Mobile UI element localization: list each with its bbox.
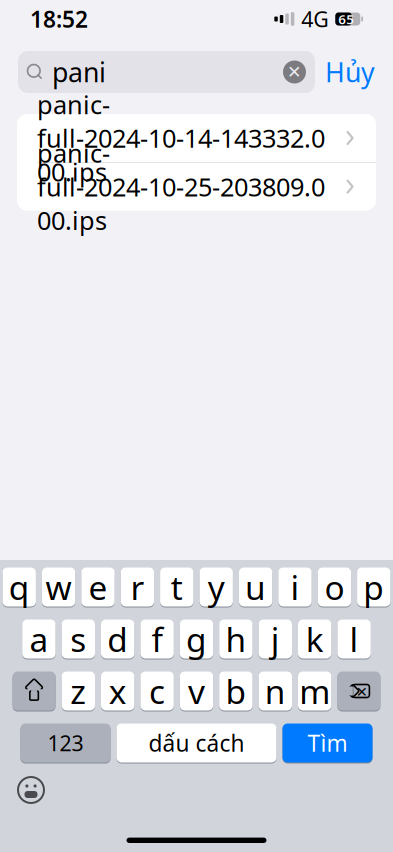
staticText: v (188, 669, 205, 713)
staticText: w (46, 565, 72, 609)
staticText: y (208, 565, 225, 609)
button[interactable]: Shift (13, 671, 56, 711)
button[interactable]: panic-full-2024-10-25-203809.000.ips (17, 163, 376, 211)
button[interactable]: t (160, 567, 193, 607)
staticText: u (245, 565, 266, 609)
staticText: dấu cách (148, 728, 244, 758)
staticText: f (152, 617, 163, 661)
staticText: 18:52 (30, 4, 88, 34)
staticText: a (29, 617, 48, 661)
staticText: p (363, 565, 384, 609)
staticText: Tìm (307, 728, 347, 758)
staticText: i (290, 565, 299, 609)
button[interactable]: u (239, 567, 272, 607)
staticText: × (356, 679, 367, 703)
button[interactable]: Emoji (10, 771, 52, 809)
button[interactable]: m (298, 671, 331, 711)
staticText: 4G (301, 5, 329, 33)
button[interactable]: a (22, 619, 56, 659)
staticText: m (299, 669, 330, 713)
staticText: c (149, 669, 165, 713)
button[interactable]: x (101, 671, 134, 711)
button[interactable]: f (140, 619, 174, 659)
button[interactable]: Delete (337, 671, 380, 711)
button[interactable]: k (298, 619, 331, 659)
staticText: d (107, 617, 128, 661)
staticText: g (186, 617, 207, 661)
staticText: x (109, 669, 127, 713)
button[interactable]: r (121, 567, 154, 607)
button[interactable]: y (199, 567, 233, 607)
staticText: k (306, 617, 324, 661)
button[interactable]: pani (18, 51, 315, 93)
staticText: 123 (47, 729, 83, 757)
staticText: r (130, 565, 144, 609)
staticText: panic-full-2024-10-25-203809.000.ips (37, 136, 325, 237)
button[interactable]: Hủy (325, 51, 375, 93)
button[interactable]: e (81, 567, 115, 607)
button[interactable]: dấu cách (116, 723, 276, 763)
button[interactable]: panic-full-2024-10-14-143332.000.ips (17, 114, 376, 162)
button[interactable]: n (259, 671, 292, 711)
button[interactable]: c (140, 671, 174, 711)
button[interactable]: 123 (20, 723, 110, 763)
button[interactable]: d (101, 619, 134, 659)
button[interactable]: l (337, 619, 371, 659)
staticText: o (324, 565, 344, 609)
button[interactable]: s (62, 619, 95, 659)
staticText: pani (52, 54, 106, 90)
staticText: t (171, 565, 183, 609)
staticText: s (70, 617, 86, 661)
staticText: b (225, 669, 246, 713)
button[interactable]: q (2, 567, 36, 607)
staticText: e (88, 565, 107, 609)
staticText: Hủy (325, 54, 375, 90)
staticText: h (225, 617, 246, 661)
button[interactable]: g (180, 619, 213, 659)
button[interactable]: h (219, 619, 253, 659)
button[interactable]: v (180, 671, 213, 711)
button[interactable]: z (62, 671, 95, 711)
staticText: ✕ (287, 62, 302, 82)
staticText: panic-full-2024-10-14-143332.000.ips (37, 87, 325, 188)
staticText: q (9, 565, 30, 609)
button[interactable]: j (259, 619, 292, 659)
button[interactable]: Tìm (282, 723, 372, 763)
button[interactable]: o (318, 567, 351, 607)
staticText: j (271, 617, 280, 661)
button[interactable]: p (357, 567, 390, 607)
button[interactable]: i (278, 567, 312, 607)
staticText: l (350, 617, 359, 661)
button[interactable]: b (219, 671, 253, 711)
button[interactable]: w (42, 567, 75, 607)
staticText: n (265, 669, 286, 713)
staticText: z (70, 669, 86, 713)
staticText: 65 (338, 10, 354, 28)
